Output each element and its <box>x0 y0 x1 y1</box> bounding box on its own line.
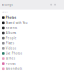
button[interactable]: Live Photos <box>0 51 64 56</box>
staticText: Selfies <box>6 57 15 60</box>
button[interactable]: Shared with You <box>0 20 64 25</box>
button[interactable]: Screenshots <box>0 66 64 71</box>
button[interactable]: Albums <box>0 30 64 36</box>
staticText: Shared with You <box>6 21 28 25</box>
button[interactable]: Portrait <box>0 61 64 66</box>
staticText: Settings <box>2 3 13 6</box>
staticText: Portrait <box>6 62 16 65</box>
button[interactable]: Recents <box>0 25 64 30</box>
staticText: Videos <box>6 47 16 50</box>
staticText: Albums <box>6 31 16 35</box>
button[interactable]: Profile <box>54 4 64 6</box>
button[interactable]: People <box>0 36 64 41</box>
staticText: Live Photos <box>6 52 22 55</box>
button[interactable]: Photos <box>0 15 64 20</box>
staticText: Places <box>6 41 14 45</box>
staticText: Recents <box>6 26 17 30</box>
staticText: Photos <box>6 16 16 19</box>
button[interactable]: Search <box>50 4 54 6</box>
button[interactable]: Selfies <box>0 56 64 61</box>
staticText: Screenshots <box>6 67 22 70</box>
staticText: Library <box>2 11 8 13</box>
button[interactable]: Videos <box>0 46 64 51</box>
staticText: People <box>6 36 17 40</box>
button[interactable]: Places <box>0 41 64 46</box>
